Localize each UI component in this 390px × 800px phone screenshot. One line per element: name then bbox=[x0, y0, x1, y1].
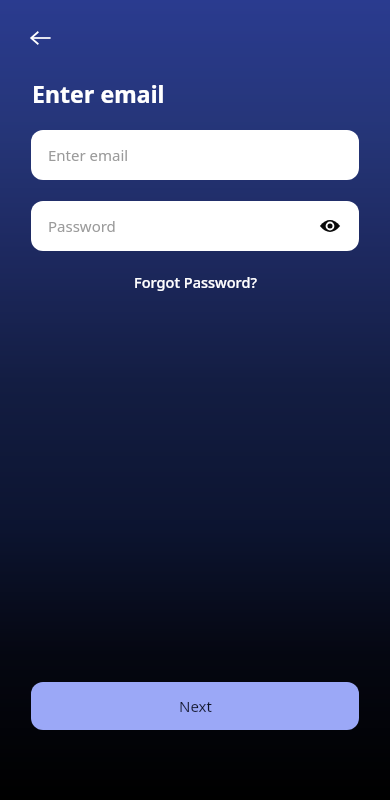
staticText: Enter email bbox=[32, 78, 165, 109]
staticText: Enter email bbox=[48, 145, 129, 165]
staticText: Password bbox=[48, 216, 116, 236]
button[interactable]: Show password bbox=[313, 209, 347, 243]
button[interactable]: Forgot Password? bbox=[126, 268, 265, 296]
button[interactable]: Enter email bbox=[31, 130, 359, 180]
button[interactable]: Next bbox=[31, 682, 359, 730]
staticText: Next bbox=[179, 696, 212, 716]
staticText: Forgot Password? bbox=[134, 272, 257, 292]
button[interactable]: Back bbox=[21, 18, 61, 58]
button[interactable]: Password bbox=[31, 201, 359, 251]
